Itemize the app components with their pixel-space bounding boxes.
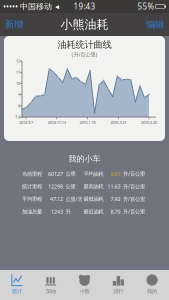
staticText: 升/百公里 [123, 183, 145, 190]
staticText: 2014.9.7 [19, 120, 33, 125]
staticText: 最低油耗 [83, 196, 103, 202]
staticText: 升/百公里 [123, 208, 145, 215]
button[interactable]: 加油 [34, 270, 68, 300]
staticText: 油耗统计曲线 [57, 39, 111, 50]
staticText: 小熊油耗 [60, 17, 108, 32]
staticText: ◂ [52, 2, 59, 11]
staticText: 19:43 [73, 1, 95, 12]
staticText: 加油总量 [22, 208, 42, 215]
staticText: 升/百公里 [123, 170, 145, 177]
button[interactable]: 排行 [101, 270, 135, 300]
staticText: 1243 [51, 208, 63, 215]
staticText: 新增 [5, 19, 23, 30]
staticText: 公里 [65, 183, 75, 190]
staticText: (升/百公里) [71, 51, 97, 58]
staticText: 60127 [48, 170, 63, 177]
staticText: 中国移动 [18, 2, 52, 11]
button[interactable]: 小熊 [68, 270, 101, 300]
staticText: 最近油耗 [83, 208, 103, 215]
staticText: 8 [18, 103, 20, 108]
button[interactable]: 编辑 [142, 13, 168, 36]
staticText: 12298 [48, 183, 63, 190]
button[interactable]: 统计 [0, 270, 34, 300]
staticText: 我的小车 [68, 154, 100, 164]
staticText: 当前里程 [22, 171, 42, 177]
staticText: 2015.3.21 [110, 120, 126, 125]
staticText: 2015.5.25 [141, 120, 157, 125]
staticText: 升 [65, 208, 70, 215]
staticText: 7.92 [110, 195, 120, 203]
staticText: 公里 [65, 171, 75, 177]
staticText: 9.87 [110, 170, 120, 177]
staticText: 7.4 [15, 114, 20, 120]
staticText: 公里/天 [65, 195, 82, 203]
button[interactable]: 我的 [135, 270, 169, 300]
staticText: 11.63 [107, 183, 120, 190]
staticText: 2014.11.13 [48, 120, 66, 125]
staticText: 小熊 [79, 288, 89, 295]
button[interactable]: 新增 [1, 13, 27, 36]
staticText: ••••• [3, 1, 18, 12]
staticText: 12 [16, 58, 20, 64]
staticText: 8.79 [110, 208, 120, 215]
staticText: 11 [16, 70, 20, 75]
staticText: 47.12 [50, 195, 63, 203]
staticText: 统计里程 [22, 183, 42, 190]
staticText: 10 [16, 81, 20, 86]
staticText: 最高油耗 [83, 183, 103, 190]
staticText: 升/百公里 [123, 195, 145, 203]
staticText: 平均油耗 [83, 171, 103, 177]
staticText: 排行 [113, 288, 123, 295]
staticText: 编辑 [146, 19, 164, 30]
staticText: 加油 [46, 288, 56, 295]
staticText: 2015.1.15 [79, 120, 95, 125]
staticText: 9 [18, 92, 20, 97]
staticText: 我的 [147, 288, 157, 295]
staticText: 统计 [12, 288, 22, 295]
staticText: 55% [137, 1, 154, 12]
staticText: 平均里程 [22, 196, 42, 202]
